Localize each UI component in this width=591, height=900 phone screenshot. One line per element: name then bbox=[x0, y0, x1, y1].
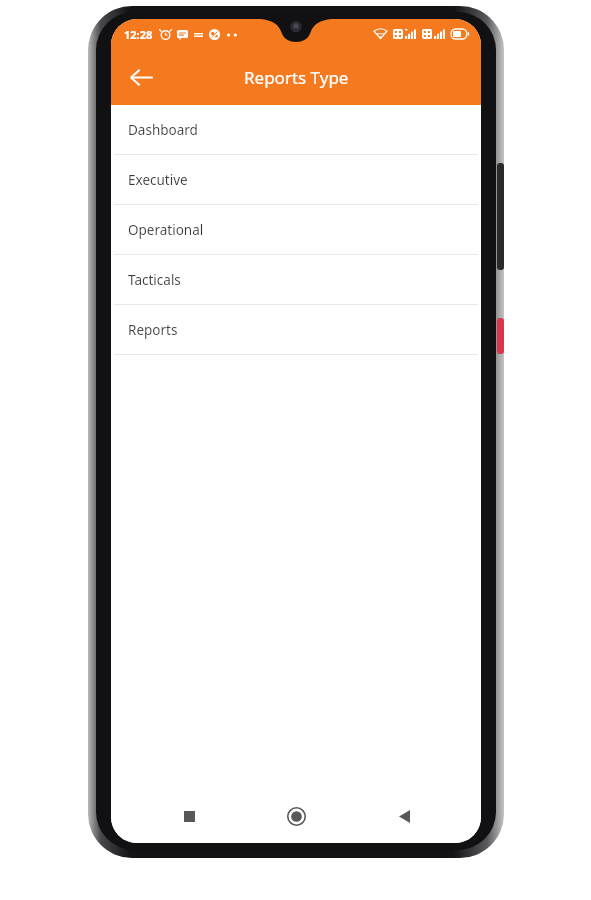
button[interactable]: Reports bbox=[111, 305, 481, 355]
button[interactable]: Back bbox=[374, 801, 434, 831]
button[interactable]: Home bbox=[266, 801, 326, 831]
staticText: Executive bbox=[128, 171, 188, 189]
button[interactable]: Dashboard bbox=[111, 105, 481, 155]
button[interactable]: Operational bbox=[111, 205, 481, 255]
staticText: Tacticals bbox=[128, 271, 181, 289]
button[interactable]: Tacticals bbox=[111, 255, 481, 305]
staticText: Operational bbox=[128, 221, 204, 239]
staticText: Reports Type bbox=[244, 66, 349, 89]
button[interactable]: Recent apps bbox=[159, 801, 219, 831]
staticText: Reports bbox=[128, 321, 178, 339]
staticText: 12:28 bbox=[124, 27, 153, 42]
button[interactable]: Executive bbox=[111, 155, 481, 205]
button[interactable]: Back bbox=[119, 55, 163, 99]
staticText: Dashboard bbox=[128, 121, 198, 139]
